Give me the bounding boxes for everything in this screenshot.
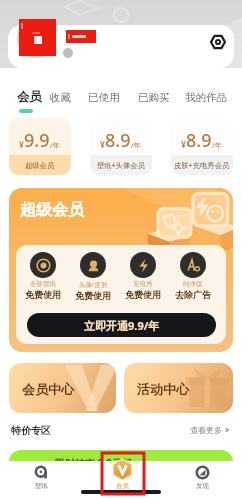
button[interactable]: 会员	[12, 84, 47, 110]
staticText: 壁纸	[35, 482, 48, 490]
staticText: /年	[131, 140, 142, 150]
staticText: 壁纸+头像会员	[97, 160, 145, 170]
button[interactable]: 查看更多	[188, 423, 232, 437]
staticText: ¥	[181, 139, 186, 151]
button[interactable]: 已购买	[133, 86, 175, 109]
staticText: 活动中心	[137, 381, 189, 397]
staticText: 9.9	[24, 128, 50, 153]
staticText: 全部壁纸	[30, 280, 56, 288]
button[interactable]: Settings	[206, 30, 230, 54]
button[interactable]: 立即开通9.9/年	[27, 313, 216, 337]
button[interactable]: ¥	[171, 118, 233, 175]
button[interactable]: 活动中心	[124, 363, 233, 413]
staticText: 8.9	[186, 128, 212, 153]
staticText: 免费使用	[125, 289, 161, 300]
button[interactable]: 头像/皮肤	[70, 252, 116, 301]
staticText: 限时特惠 9.9元起	[55, 456, 132, 470]
button[interactable]: 已使用	[83, 86, 125, 109]
staticText: 超级会员	[20, 200, 84, 220]
button[interactable]: 我的作品	[180, 86, 232, 109]
button[interactable]: 收藏	[45, 86, 76, 109]
button[interactable]: 会员中心	[9, 363, 116, 413]
staticText: 会员	[17, 89, 42, 105]
staticText: 皮肤+充电秀会员	[174, 160, 230, 170]
button[interactable]: 壁纸	[21, 459, 61, 491]
button[interactable]: 限时特惠 9.9元起	[9, 450, 233, 490]
button[interactable]: 全部壁纸	[20, 252, 66, 300]
staticText: /年	[212, 140, 223, 150]
staticText: 查看更多	[190, 425, 222, 435]
staticText: 会员	[116, 482, 129, 490]
staticText: 8.9	[105, 128, 131, 153]
staticText: 我的作品	[185, 91, 227, 104]
staticText: 立即开通9.9/年	[84, 318, 160, 333]
staticText: 已使用	[88, 91, 120, 104]
staticText: 收藏	[50, 91, 71, 104]
button[interactable]: 发现	[182, 459, 222, 491]
staticText: 特价专区	[11, 424, 51, 437]
staticText: ¥	[100, 139, 105, 151]
button[interactable]: 会员	[102, 459, 142, 491]
button[interactable]: ¥	[9, 118, 71, 175]
staticText: 充电秀	[133, 280, 153, 288]
staticText: 已购买	[138, 91, 170, 104]
staticText: 去除广告	[175, 289, 211, 300]
staticText: 纯净版	[183, 280, 203, 288]
button[interactable]	[8, 25, 234, 68]
button[interactable]: 纯净版	[170, 252, 216, 300]
button[interactable]: 充电秀	[120, 252, 166, 300]
staticText: 免费使用	[75, 290, 111, 301]
staticText: 发现	[196, 482, 209, 490]
staticText: 会员中心	[22, 381, 74, 397]
staticText: ¥	[19, 139, 24, 151]
staticText: 超级会员	[25, 161, 55, 170]
button[interactable]: ¥	[90, 118, 152, 175]
staticText: 头像/皮肤	[79, 280, 108, 289]
staticText: /年	[50, 140, 61, 150]
staticText: 免费使用	[25, 289, 61, 300]
